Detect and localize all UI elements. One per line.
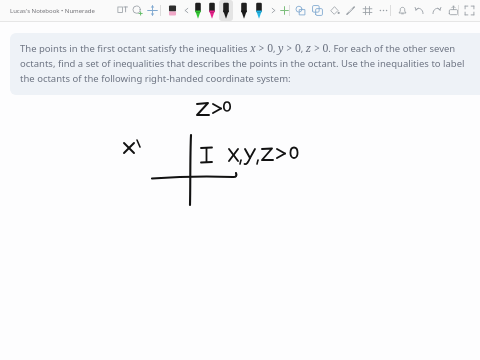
staticText: Lucas's Notebook • Numerade [10,7,95,15]
button[interactable]: The points in the first octant satisfy t… [10,33,480,95]
button[interactable]: Redo [429,2,443,19]
button[interactable]: Black pen selected [219,0,233,21]
button[interactable]: Lucas's Notebook • Numerade [10,0,480,21]
button[interactable]: Add pen [277,2,291,19]
staticText: The points in the first octant satisfy t… [20,41,468,85]
button[interactable]: Undo [412,2,426,19]
button[interactable]: Adjust [360,2,374,19]
button[interactable]: Fill [327,2,341,19]
button[interactable]: Green pen [191,0,205,21]
button[interactable]: Black pen [237,0,251,21]
button[interactable]: Next pens [266,2,280,19]
button[interactable]: Fullscreen [462,2,476,19]
button[interactable]: Previous pens [179,2,193,19]
button[interactable]: Share [446,2,460,19]
button[interactable]: Eraser [165,2,179,19]
button[interactable]: Magenta pen [205,0,219,21]
button[interactable]: Highlighter [343,2,357,19]
button[interactable]: Transform [145,2,159,19]
button[interactable]: Cyan pen [252,0,266,21]
button[interactable]: Lasso select [130,2,144,19]
button[interactable]: Duplicate [310,2,324,19]
button[interactable]: Notifications [395,2,409,19]
button[interactable]: Text select [115,2,129,19]
button[interactable]: More options [376,2,390,19]
button[interactable]: Shapes [293,2,307,19]
